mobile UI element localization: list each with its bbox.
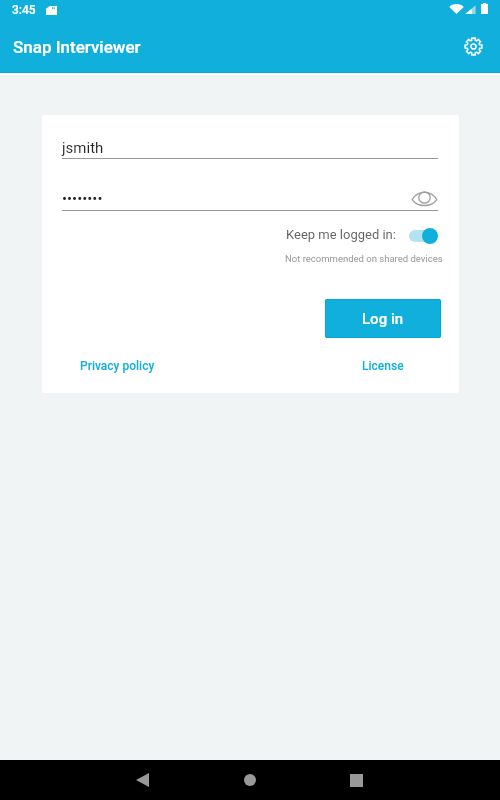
button[interactable]: Back (122, 760, 163, 800)
button[interactable]: Password (62, 184, 402, 211)
button[interactable]: Show password (410, 184, 438, 212)
button[interactable]: Privacy policy (71, 350, 163, 382)
staticText: 3:45 (12, 3, 36, 17)
staticText: Keep me logged in: (286, 227, 396, 242)
button[interactable]: Log in (326, 300, 440, 337)
staticText: Log in (362, 310, 404, 328)
staticText: Not recommended on shared devices (285, 253, 443, 264)
staticText: Privacy policy (80, 359, 155, 373)
button[interactable]: License (352, 350, 414, 382)
staticText: •••••••• (62, 190, 103, 208)
button[interactable]: Settings (453, 26, 493, 66)
staticText: Snap Interviewer (13, 37, 141, 57)
button[interactable]: Recents (336, 760, 376, 800)
staticText: License (362, 359, 404, 373)
button[interactable]: Home (230, 760, 270, 800)
button[interactable]: Keep me logged in (407, 222, 442, 250)
button[interactable]: Username (62, 132, 438, 159)
staticText: jsmith (62, 139, 104, 157)
